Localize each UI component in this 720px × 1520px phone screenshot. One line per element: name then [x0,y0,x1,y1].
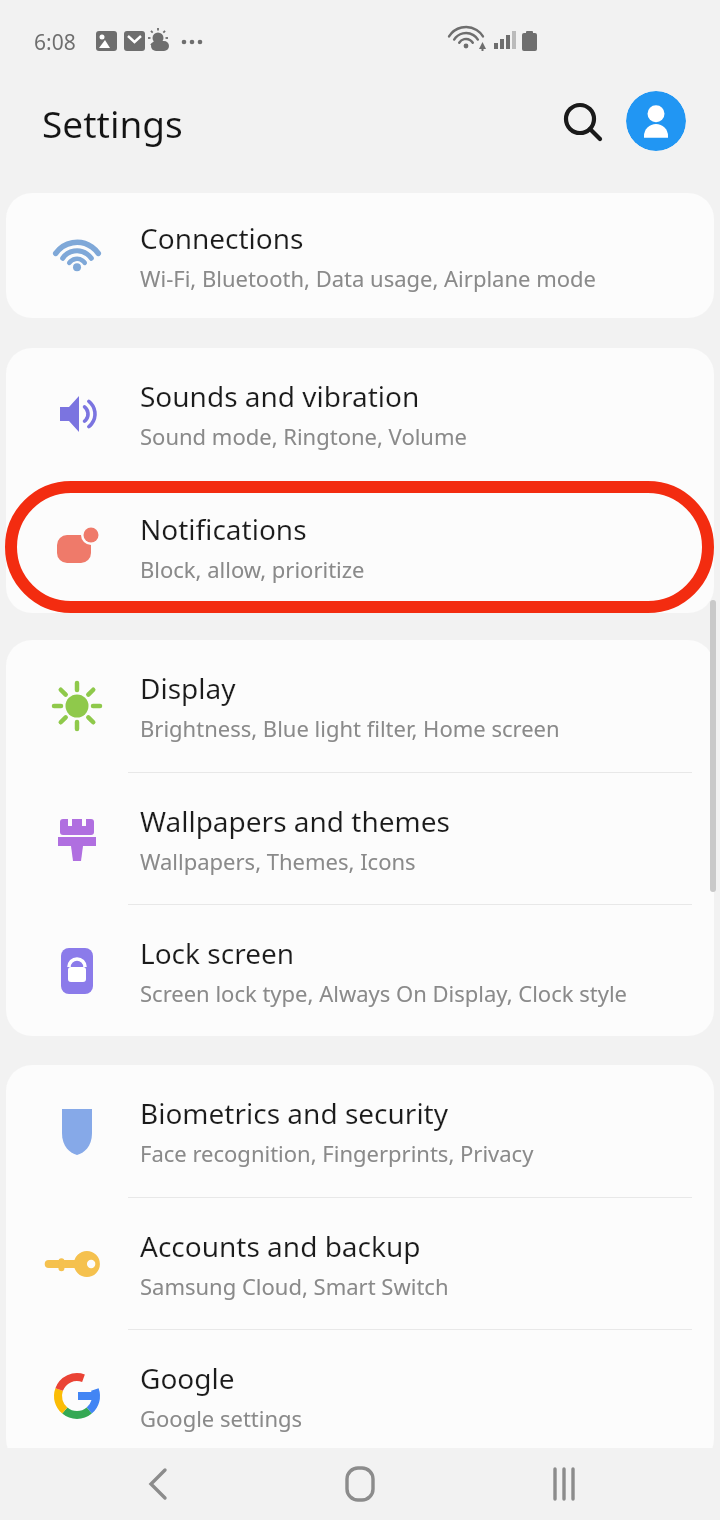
button[interactable]: Lock screen [6,905,714,1036]
button[interactable]: Biometrics and security [6,1065,714,1197]
button[interactable]: Google [6,1330,714,1461]
staticText: Notifications [140,510,307,548]
staticText: Screen lock type, Always On Display, Clo… [140,978,627,1008]
button[interactable]: Display [6,640,714,772]
button[interactable]: Sounds and vibration [6,348,714,480]
staticText: Brightness, Blue light filter, Home scre… [140,713,560,743]
button[interactable]: Wallpapers and themes [6,773,714,904]
button[interactable]: Connections [6,193,714,318]
staticText: Lock screen [140,934,295,972]
button[interactable]: Home [330,1454,390,1514]
button[interactable]: Notifications [6,480,714,613]
staticText: Sound mode, Ringtone, Volume [140,421,467,451]
staticText: Sounds and vibration [140,377,420,415]
button[interactable]: Account [626,91,686,151]
staticText: Block, allow, prioritize [140,554,365,584]
button[interactable]: Search [548,88,616,156]
staticText: Display [140,669,236,707]
staticText: Biometrics and security [140,1094,449,1132]
button[interactable]: Recent apps [534,1454,594,1514]
staticText: Settings [42,98,183,148]
staticText: Wi-Fi, Bluetooth, Data usage, Airplane m… [140,263,596,293]
staticText: Face recognition, Fingerprints, Privacy [140,1138,534,1168]
staticText: Connections [140,219,304,257]
button[interactable]: Back [125,1454,185,1514]
staticText: Google settings [140,1403,303,1433]
staticText: Accounts and backup [140,1227,421,1265]
staticText: Google [140,1359,235,1397]
staticText: Wallpapers and themes [140,802,450,840]
button[interactable]: Accounts and backup [6,1198,714,1329]
staticText: 6:08 [34,28,76,57]
staticText: Wallpapers, Themes, Icons [140,846,416,876]
staticText: Samsung Cloud, Smart Switch [140,1271,449,1301]
